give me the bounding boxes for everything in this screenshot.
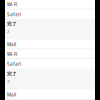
button[interactable]: Wi-Fi <box>5 0 95 9</box>
button[interactable]: Safari <box>5 59 95 69</box>
staticText: Safari <box>7 11 21 18</box>
staticText: Mail <box>7 92 16 98</box>
staticText: Wi-Fi <box>7 1 17 8</box>
button[interactable]: Wi-Fi <box>5 49 95 58</box>
staticText: 2 <box>7 28 9 34</box>
staticText: 完了 <box>7 21 17 27</box>
staticText: 3 <box>7 78 9 84</box>
button[interactable]: Mail <box>5 90 95 99</box>
button[interactable]: Mail <box>5 39 95 49</box>
staticText: Mail <box>7 41 16 48</box>
staticText: 完了 <box>7 71 17 77</box>
staticText: Wi-Fi <box>7 51 17 57</box>
staticText: Safari <box>7 61 21 67</box>
button[interactable]: Safari <box>5 9 95 18</box>
